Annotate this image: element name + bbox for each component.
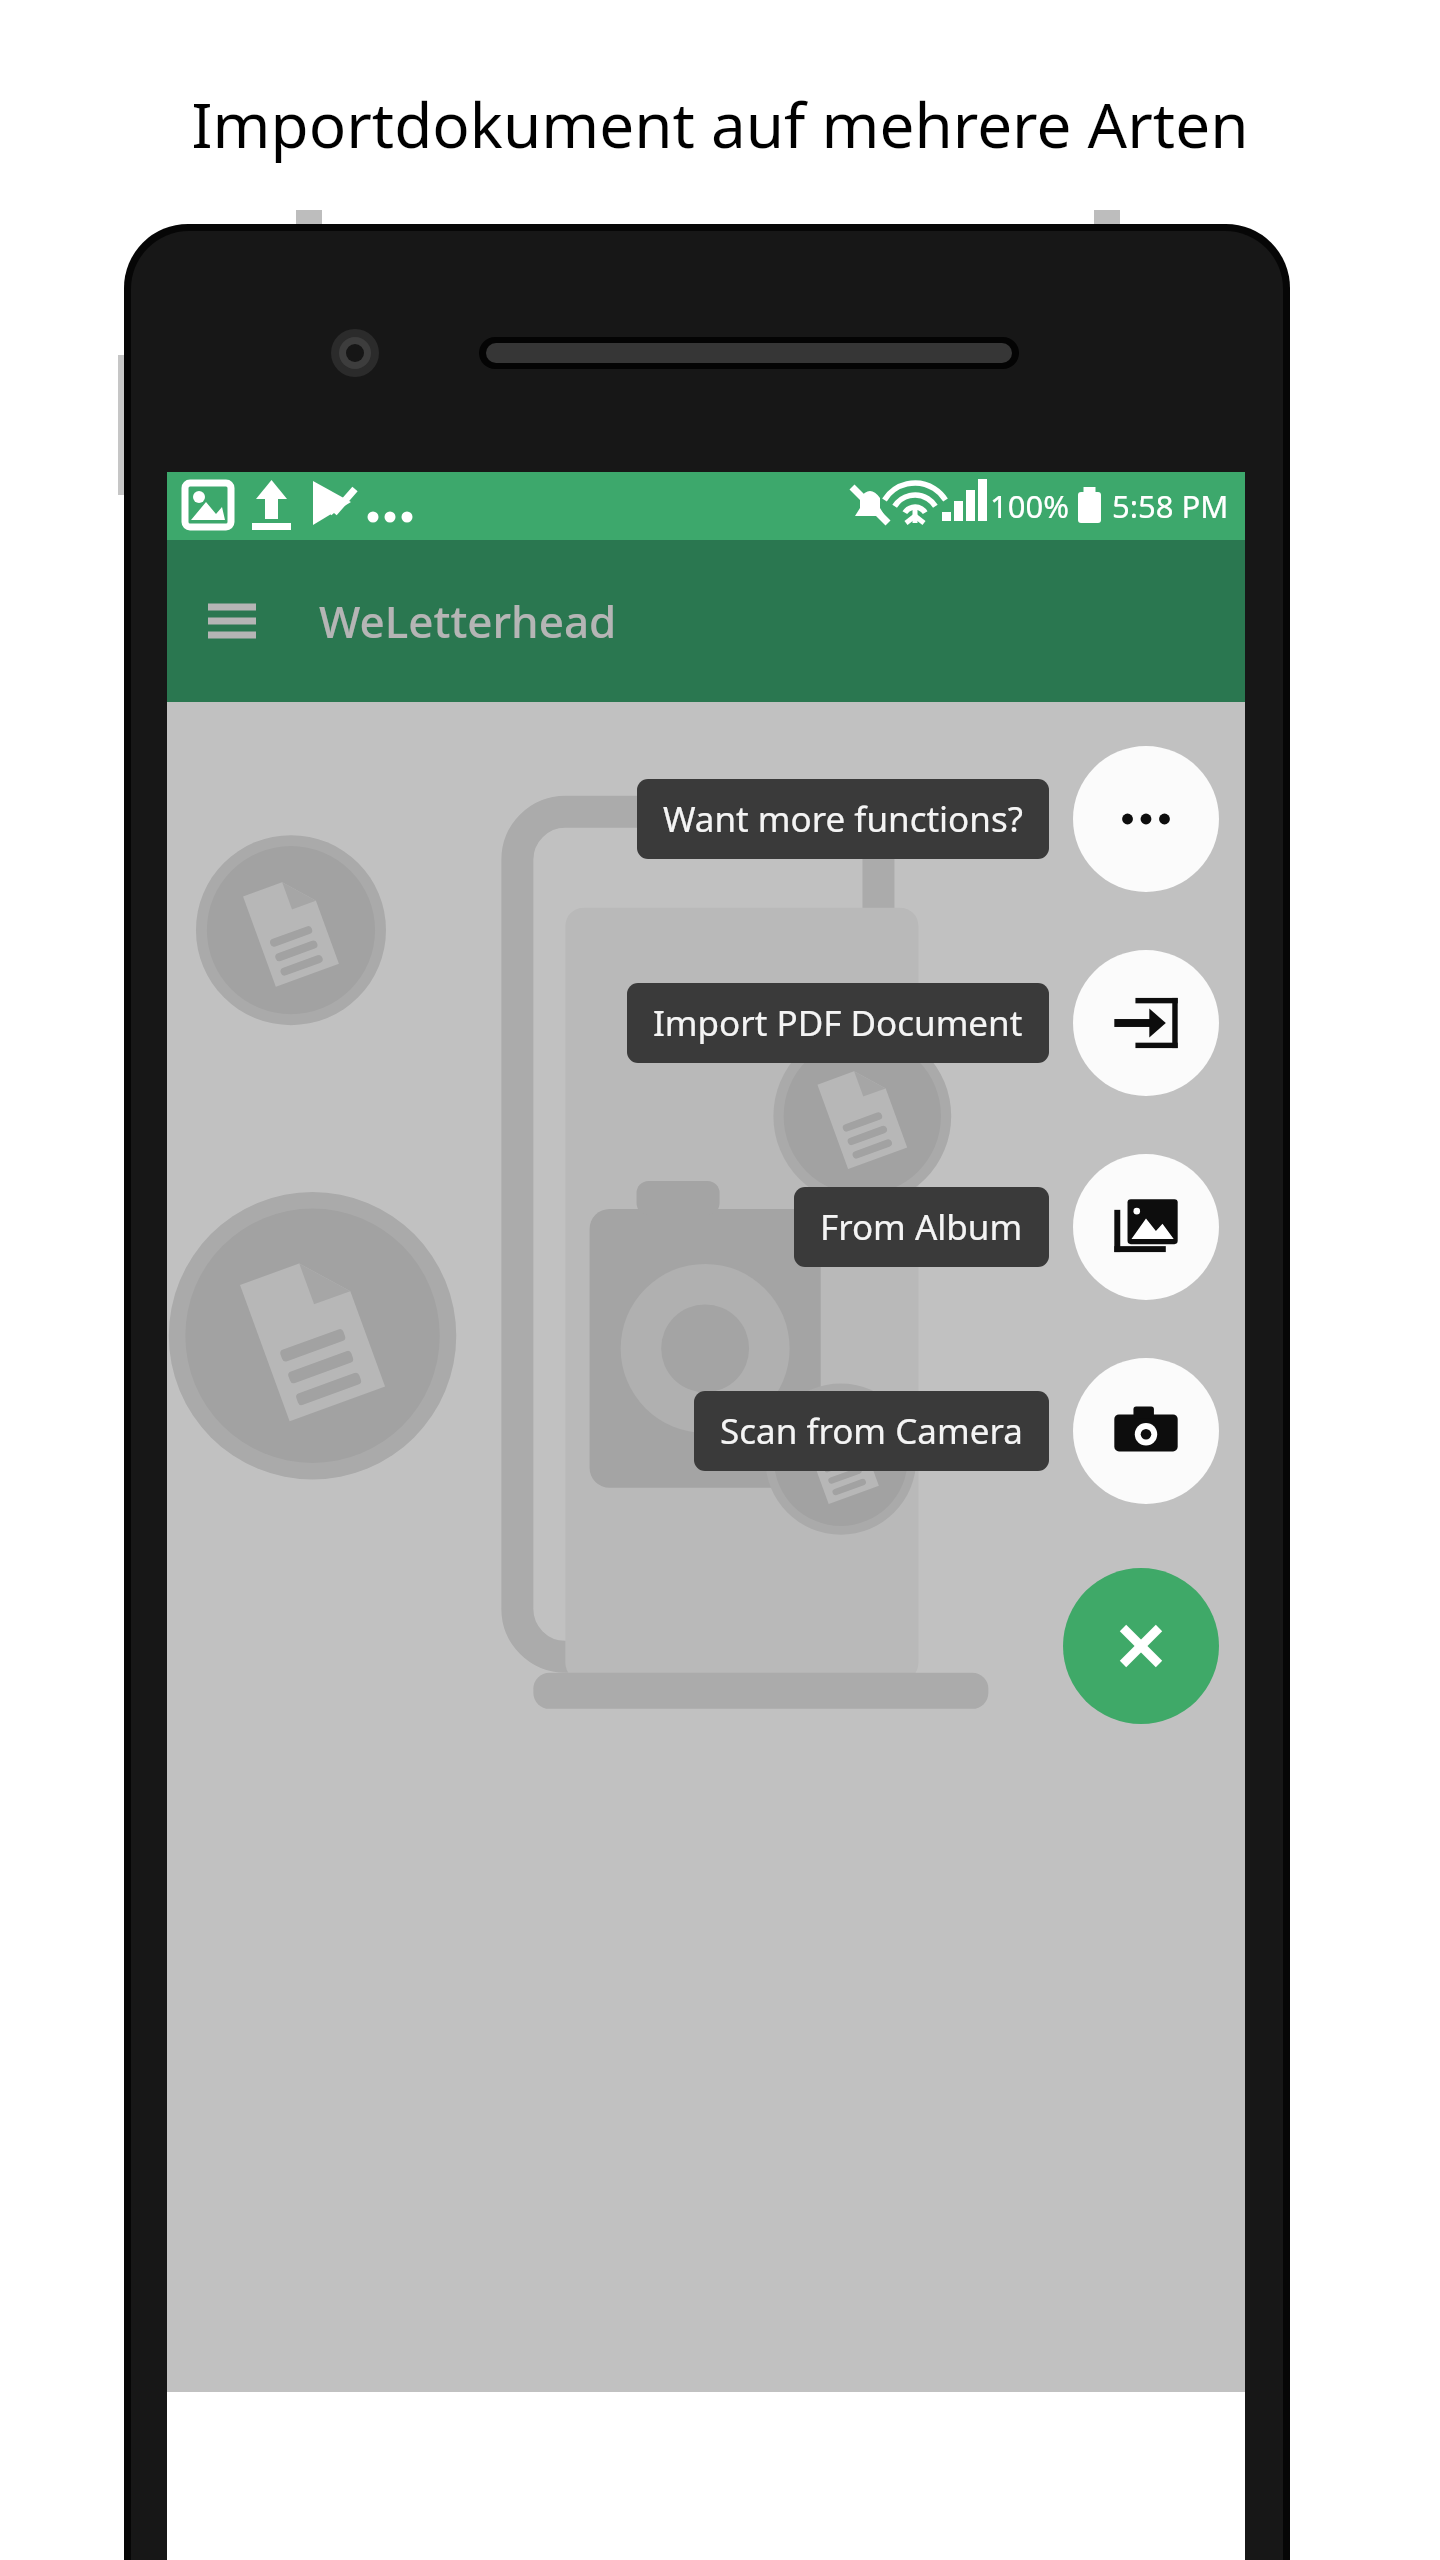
staticText: WeLetterhead bbox=[319, 591, 617, 651]
button[interactable]: Close menu bbox=[1063, 1568, 1219, 1724]
staticText: 5:58 PM bbox=[1112, 485, 1229, 527]
staticText: Import PDF Document bbox=[653, 999, 1023, 1047]
button[interactable]: More functions bbox=[1073, 746, 1219, 892]
button[interactable]: From Album bbox=[794, 1187, 1049, 1267]
staticText: Want more functions? bbox=[663, 795, 1023, 843]
button[interactable]: Scan from camera bbox=[1073, 1358, 1219, 1504]
staticText: Importdokument auf mehrere Arten bbox=[0, 82, 1440, 166]
button[interactable]: Want more functions? bbox=[637, 779, 1049, 859]
button[interactable]: Open navigation menu bbox=[189, 578, 275, 664]
button[interactable]: Scan from Camera bbox=[694, 1391, 1049, 1471]
staticText: 100% bbox=[990, 485, 1069, 527]
button[interactable]: Import PDF document bbox=[1073, 950, 1219, 1096]
button[interactable]: Choose from album bbox=[1073, 1154, 1219, 1300]
button[interactable]: Import PDF Document bbox=[627, 983, 1049, 1063]
staticText: From Album bbox=[820, 1203, 1023, 1251]
staticText: Scan from Camera bbox=[720, 1407, 1023, 1455]
